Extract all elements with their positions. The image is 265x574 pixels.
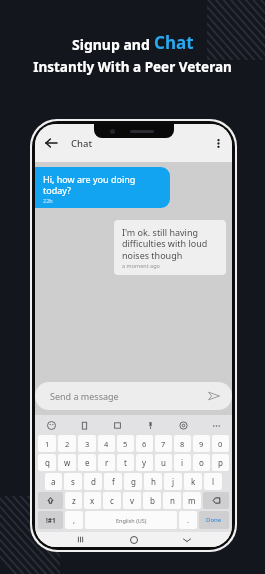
button[interactable]: Hide keyboard — [179, 532, 194, 547]
button[interactable]: e — [78, 454, 96, 471]
button[interactable]: 4 — [98, 435, 115, 452]
button[interactable]: Settings — [176, 418, 190, 432]
staticText: 6 — [142, 439, 147, 449]
button[interactable]: 1 — [38, 435, 56, 452]
button[interactable]: 0 — [212, 435, 229, 452]
staticText: . — [187, 515, 190, 525]
button[interactable]: 6 — [136, 435, 153, 452]
button[interactable]: More — [209, 418, 223, 432]
staticText: r — [105, 457, 109, 468]
staticText: m — [188, 495, 196, 506]
staticText: English (US) — [116, 517, 147, 524]
button[interactable]: s — [64, 473, 82, 490]
button[interactable]: g — [124, 473, 142, 490]
staticText: 9 — [199, 439, 204, 449]
button[interactable]: 5 — [117, 435, 134, 452]
staticText: u — [161, 457, 166, 468]
staticText: 5 — [123, 439, 128, 449]
button[interactable]: w — [58, 454, 76, 471]
staticText: Send a message — [50, 390, 208, 402]
staticText: 0 — [218, 439, 223, 449]
button[interactable]: o — [193, 454, 210, 471]
staticText: 4 — [104, 439, 109, 449]
button[interactable]: j — [164, 473, 182, 490]
staticText: 7 — [161, 439, 166, 449]
button[interactable]: q — [38, 454, 56, 471]
button[interactable]: !#1 — [38, 511, 63, 529]
button[interactable]: Back — [40, 132, 62, 154]
button[interactable]: p — [212, 454, 229, 471]
staticText: 2 — [65, 439, 70, 449]
button[interactable]: Home — [126, 532, 141, 547]
button[interactable]: 3 — [78, 435, 96, 452]
button[interactable]: f — [104, 473, 122, 490]
staticText: d — [91, 476, 96, 487]
button[interactable]: Sticker — [110, 418, 124, 432]
button[interactable]: x — [84, 492, 101, 509]
button[interactable]: u — [155, 454, 172, 471]
button[interactable]: . — [179, 511, 197, 529]
staticText: j — [172, 476, 175, 487]
staticText: s — [71, 476, 75, 487]
staticText: !#1 — [46, 516, 56, 525]
staticText: g — [131, 476, 136, 487]
button[interactable]: n — [163, 492, 181, 509]
button[interactable]: a — [45, 473, 62, 490]
button[interactable]: 8 — [174, 435, 191, 452]
staticText: z — [72, 495, 76, 506]
staticText: 3 — [85, 439, 90, 449]
staticText: 1 — [45, 439, 50, 449]
button[interactable]: Backspace — [203, 492, 229, 509]
button[interactable]: i — [174, 454, 191, 471]
button[interactable]: l — [204, 473, 222, 490]
button[interactable]: More options — [208, 133, 228, 153]
staticText: x — [90, 495, 95, 506]
button[interactable]: r — [98, 454, 115, 471]
staticText: w — [64, 457, 71, 468]
button[interactable]: Send a message — [35, 382, 232, 410]
staticText: Chat — [71, 137, 93, 150]
button[interactable]: 7 — [155, 435, 172, 452]
staticText: b — [150, 495, 155, 506]
staticText: I'm ok. still having difficulties with l… — [122, 226, 218, 262]
button[interactable]: c — [103, 492, 121, 509]
button[interactable]: Hi, how are you doing today? — [35, 167, 170, 208]
button[interactable]: Shift — [38, 492, 63, 509]
button[interactable]: Recents — [73, 532, 88, 547]
staticText: v — [130, 495, 135, 506]
staticText: Done — [206, 516, 222, 524]
staticText: Chat — [154, 31, 194, 54]
button[interactable]: b — [143, 492, 161, 509]
staticText: o — [199, 457, 204, 468]
button[interactable]: Voice input — [143, 418, 157, 432]
button[interactable]: Emoji — [44, 418, 58, 432]
button[interactable]: z — [65, 492, 82, 509]
button[interactable]: I'm ok. still having difficulties with l… — [114, 220, 226, 275]
staticText: i — [181, 457, 184, 468]
button[interactable]: y — [136, 454, 153, 471]
button[interactable]: v — [123, 492, 141, 509]
staticText: h — [151, 476, 156, 487]
staticText: a — [51, 476, 56, 487]
staticText: f — [112, 476, 115, 487]
button[interactable]: d — [84, 473, 102, 490]
staticText: a moment ago — [122, 262, 160, 269]
button[interactable]: h — [144, 473, 162, 490]
staticText: Signup and — [72, 35, 154, 54]
button[interactable]: 9 — [193, 435, 210, 452]
other: Send — [208, 390, 220, 402]
button[interactable]: 2 — [58, 435, 76, 452]
staticText: 8 — [180, 439, 185, 449]
staticText: l — [212, 476, 215, 487]
button[interactable]: Clipboard — [77, 418, 91, 432]
button[interactable]: English (US) — [85, 511, 177, 529]
button[interactable]: k — [184, 473, 202, 490]
staticText: t — [124, 457, 127, 468]
button[interactable]: t — [117, 454, 134, 471]
button[interactable]: m — [183, 492, 201, 509]
button[interactable]: Done — [199, 511, 229, 529]
staticText: Hi, how are you doing today? — [43, 173, 162, 197]
button[interactable]: , — [65, 511, 83, 529]
staticText: 22h — [43, 197, 53, 204]
staticText: c — [110, 495, 114, 506]
